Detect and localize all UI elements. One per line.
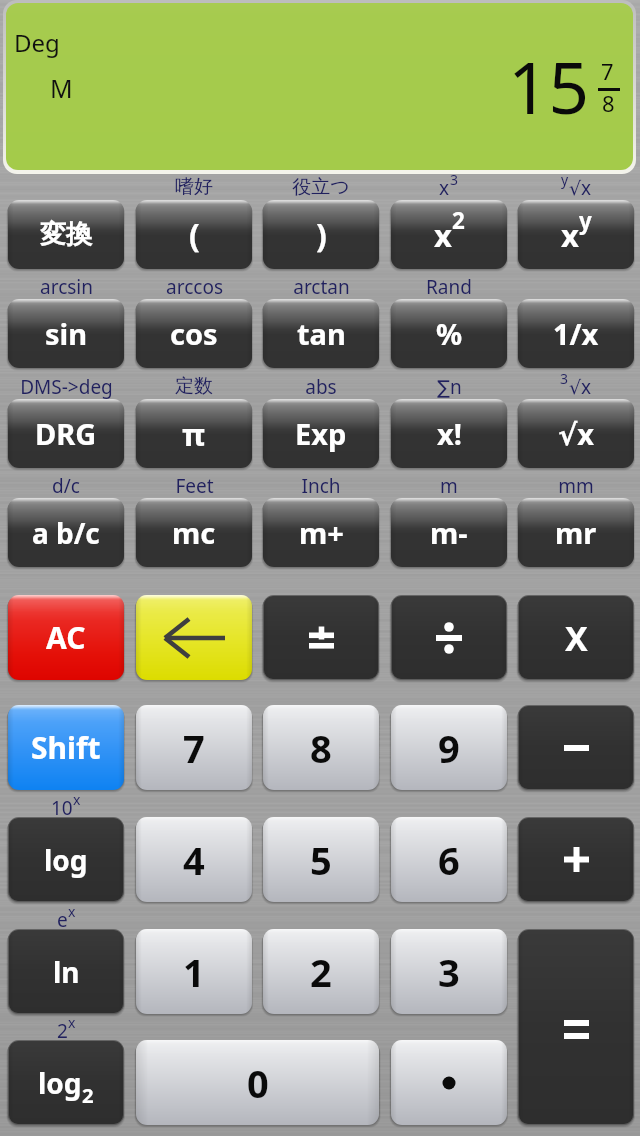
button[interactable]: 4 [136, 817, 252, 902]
button[interactable]: x! [391, 399, 507, 468]
staticText: AC [46, 617, 86, 658]
button[interactable]: log [8, 817, 124, 902]
staticText: DRG [35, 414, 97, 453]
staticText: 嗜好 [175, 175, 213, 199]
button[interactable]: Plus minus [263, 595, 379, 680]
staticText: 6 [438, 834, 460, 886]
staticText: 15 [508, 38, 590, 135]
staticText: x [68, 1013, 76, 1032]
staticText: x! [437, 414, 462, 453]
button[interactable]: sin [8, 299, 124, 368]
button[interactable]: mc [136, 498, 252, 567]
staticText: d/c [52, 473, 80, 499]
button[interactable]: mr [518, 498, 634, 567]
button[interactable]: π [136, 399, 252, 468]
button[interactable]: Divide [391, 595, 507, 680]
staticText: arctan [293, 274, 350, 300]
staticText: mc [172, 513, 216, 552]
staticText: ∑n [437, 374, 462, 400]
staticText: 4 [183, 834, 205, 886]
staticText: 8 [310, 722, 332, 774]
staticText: Deg [14, 26, 60, 59]
staticText: 3 [450, 170, 459, 189]
button[interactable]: X [518, 595, 634, 680]
staticText: Exp [295, 414, 347, 453]
staticText: arccos [166, 274, 223, 300]
staticText: 2 [57, 1018, 68, 1044]
button[interactable]: √x [518, 399, 634, 468]
staticText: Inch [301, 473, 341, 499]
staticText: 1/x [553, 314, 599, 353]
button[interactable]: 3 [391, 929, 507, 1014]
other: Decimal point [439, 1073, 459, 1093]
button[interactable]: 1 [136, 929, 252, 1014]
staticText: 10 [51, 795, 73, 821]
button[interactable]: cos [136, 299, 252, 368]
staticText: 5 [310, 834, 332, 886]
staticText: 7 [183, 722, 205, 774]
staticText: ln [53, 953, 80, 991]
button[interactable]: 変換 [8, 200, 124, 269]
staticText: sin [45, 314, 88, 353]
button[interactable]: ln [8, 929, 124, 1014]
staticText: M [50, 71, 73, 105]
staticText: x [439, 175, 450, 201]
button[interactable]: 5 [263, 817, 379, 902]
button[interactable]: 0 [136, 1040, 379, 1125]
staticText: e [57, 907, 68, 933]
staticText: y [579, 205, 592, 235]
staticText: y [561, 170, 569, 189]
button[interactable]: Plus [518, 817, 634, 902]
staticText: 0 [247, 1057, 269, 1109]
other: Backspace [163, 619, 225, 657]
button[interactable]: tan [263, 299, 379, 368]
staticText: x [434, 214, 452, 256]
button[interactable]: 9 [391, 705, 507, 790]
staticText: ( [189, 213, 200, 257]
staticText: √x [558, 414, 595, 453]
staticText: 役立つ [292, 175, 350, 199]
other: Minus [564, 735, 589, 761]
staticText: mr [555, 513, 597, 552]
button[interactable]: Equals [518, 929, 634, 1125]
button[interactable]: Backspace [136, 595, 252, 680]
button[interactable]: DRG [8, 399, 124, 468]
other: Divide [436, 625, 462, 651]
staticText: m [440, 473, 458, 499]
other: Equals [564, 1018, 589, 1036]
staticText: x [68, 902, 76, 921]
button[interactable]: AC [8, 595, 124, 680]
staticText: π [182, 413, 206, 455]
button[interactable]: 7 [136, 705, 252, 790]
button[interactable]: log [8, 1040, 124, 1125]
staticText: a b/c [32, 514, 100, 552]
button[interactable]: Decimal point [391, 1040, 507, 1125]
button[interactable]: a b/c [8, 498, 124, 567]
button[interactable]: Minus [518, 705, 634, 790]
button[interactable]: % [391, 299, 507, 368]
other: Plus [564, 847, 589, 872]
button[interactable]: x [518, 200, 634, 269]
staticText: 定数 [175, 374, 213, 398]
button[interactable]: 2 [263, 929, 379, 1014]
button[interactable]: m- [391, 498, 507, 567]
staticText: 3 [560, 369, 569, 388]
button[interactable]: Shift [8, 705, 124, 790]
button[interactable]: 8 [263, 705, 379, 790]
staticText: √x [569, 374, 592, 400]
staticText: x [73, 790, 81, 809]
staticText: 変換 [40, 218, 92, 251]
button[interactable]: 1/x [518, 299, 634, 368]
button[interactable]: ( [136, 200, 252, 269]
button[interactable]: m+ [263, 498, 379, 567]
button[interactable]: ) [263, 200, 379, 269]
button[interactable]: 6 [391, 817, 507, 902]
staticText: 7 [601, 56, 614, 86]
staticText: log [44, 841, 88, 879]
staticText: abs [305, 374, 337, 400]
button[interactable]: x [391, 200, 507, 269]
staticText: x [561, 214, 579, 256]
button[interactable]: Exp [263, 399, 379, 468]
staticText: % [436, 314, 463, 353]
staticText: Shift [31, 727, 101, 768]
